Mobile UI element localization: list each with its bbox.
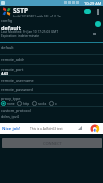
button[interactable]: remote_password (0, 85, 103, 94)
staticText: default (1, 45, 14, 50)
staticText: http (23, 102, 30, 106)
staticText: remote_port (1, 67, 24, 72)
button[interactable]: custom_protocol (0, 107, 103, 117)
button[interactable]: proxy_type (0, 94, 103, 107)
button[interactable]: remote_username (0, 76, 103, 85)
button[interactable]: remote_addr (0, 55, 103, 65)
staticText: SSTP (13, 6, 28, 15)
staticText: proxy_type (1, 96, 21, 101)
staticText: Expiration: indeterminate (1, 34, 40, 38)
staticText: Last Modified: Fri Jan 10 17:25:03 GMT (1, 30, 58, 34)
staticText: socks (38, 102, 47, 106)
staticText: default (1, 24, 21, 31)
button[interactable]: More options (94, 8, 101, 15)
staticText: none (7, 102, 15, 106)
staticText: 10:29 AM (84, 1, 102, 6)
button[interactable]: x (48, 101, 58, 106)
staticText: remote_addr (1, 57, 25, 62)
staticText: 443 (1, 71, 9, 77)
staticText: config (1, 18, 13, 23)
staticText: x (55, 102, 57, 106)
button[interactable]: default (0, 43, 103, 55)
staticText: ddns_ipv4 (1, 114, 19, 119)
staticText: remote_password (1, 87, 33, 92)
button[interactable]: none (0, 101, 16, 106)
staticText: build 20180401 with SSL v1.0.2n (13, 15, 61, 17)
button[interactable]: Nice job! (0, 123, 103, 134)
button[interactable]: remote_port (0, 65, 103, 76)
staticText: Nice job! (2, 126, 21, 132)
staticText: This is a AdSdn63 text (30, 127, 63, 131)
staticText: CONNECT (43, 141, 62, 146)
button[interactable]: VPN toggle (84, 9, 91, 14)
staticText: custom_protocol (1, 108, 31, 113)
staticText: remote_username (1, 78, 34, 83)
button[interactable]: socks (31, 101, 48, 106)
button[interactable]: Edit profile (95, 21, 101, 27)
button[interactable]: http (16, 101, 31, 106)
